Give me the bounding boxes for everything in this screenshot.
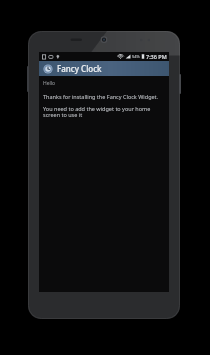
button[interactable]: Fancy Clock app icon [39,61,169,76]
staticText: Hello [43,80,56,87]
other: Fancy Clock app icon [43,64,53,74]
staticText: 54% [132,54,140,59]
staticText: Fancy Clock [57,63,102,74]
staticText: You need to add the widget to your home … [43,105,165,119]
staticText: 7:36 PM [146,53,167,60]
staticText: Thanks for installing the Fancy Clock Wi… [43,93,159,100]
